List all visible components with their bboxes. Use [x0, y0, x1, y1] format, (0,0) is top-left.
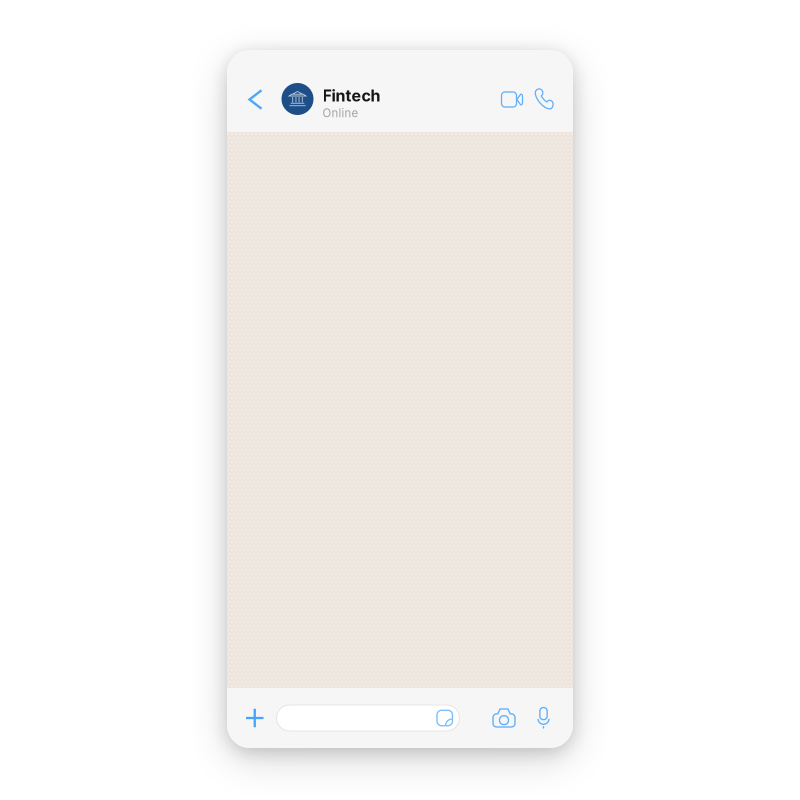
button[interactable]: Attach: [227, 697, 276, 739]
button[interactable]: Record voice message: [526, 696, 573, 739]
button[interactable]: [276, 705, 459, 731]
button[interactable]: Video call: [493, 80, 530, 119]
button[interactable]: Fintech: [277, 72, 384, 126]
button[interactable]: Voice call: [526, 78, 561, 119]
staticText: Online: [322, 106, 358, 120]
button[interactable]: Back: [238, 77, 272, 122]
button[interactable]: Camera: [481, 697, 526, 739]
staticText: Fintech: [322, 86, 380, 105]
